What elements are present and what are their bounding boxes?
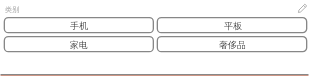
button[interactable]: 手机 — [4, 17, 154, 34]
staticText: 类别 — [5, 5, 19, 14]
staticText: 奢侈品 — [219, 39, 246, 50]
button[interactable]: 家电 — [4, 36, 154, 53]
button[interactable]: 平板 — [157, 17, 308, 34]
staticText: 手机 — [70, 20, 88, 31]
button[interactable]: Edit — [295, 1, 310, 16]
staticText: 平板 — [224, 20, 242, 31]
staticText: 家电 — [70, 39, 88, 50]
button[interactable]: 奢侈品 — [157, 36, 308, 53]
